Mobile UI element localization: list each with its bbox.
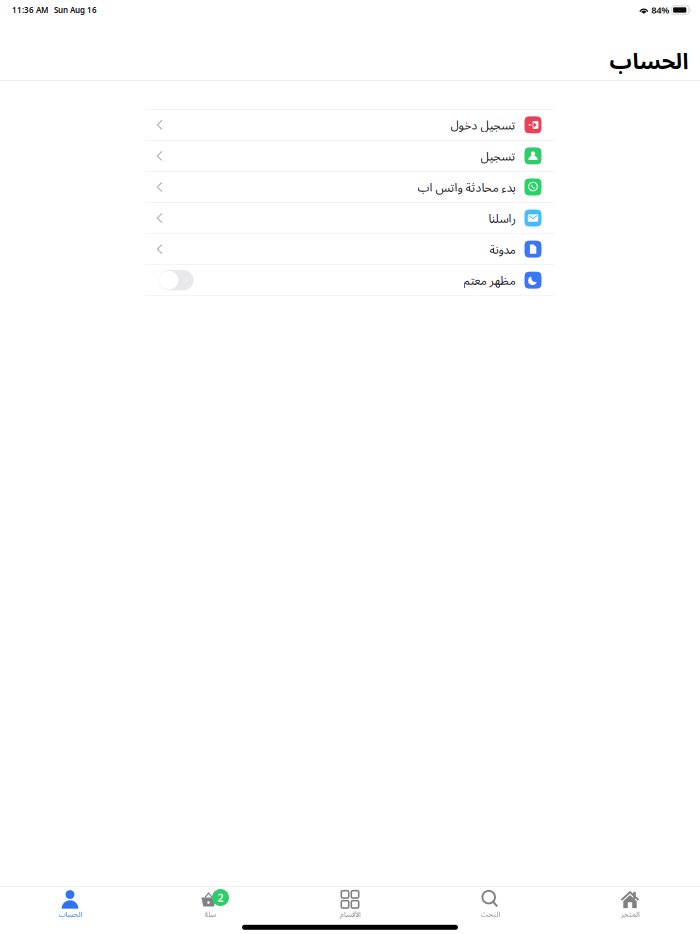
button[interactable]: تسجيل دخول: [145, 110, 555, 140]
staticText: راسلنا: [488, 210, 515, 226]
button[interactable]: الأقسام: [280, 887, 420, 921]
button[interactable]: بدء محادثة واتس اب: [145, 172, 555, 202]
button[interactable]: الحساب: [0, 887, 140, 921]
staticText: البحث: [480, 909, 500, 919]
button[interactable]: 2: [140, 887, 280, 921]
button[interactable]: راسلنا: [145, 203, 555, 233]
button[interactable]: تسجيل: [145, 141, 555, 171]
staticText: 11:36 AM: [12, 5, 48, 15]
staticText: الحساب: [58, 909, 82, 919]
staticText: الأقسام: [339, 909, 360, 919]
staticText: المتجر: [620, 909, 639, 919]
staticText: مظهر معتم: [463, 272, 515, 288]
button[interactable]: مدونة: [145, 234, 555, 264]
staticText: مدونة: [489, 241, 515, 257]
button[interactable]: مظهر معتم: [145, 265, 555, 295]
button[interactable]: Dark appearance toggle: [155, 270, 193, 290]
staticText: بدء محادثة واتس اب: [417, 179, 515, 195]
staticText: تسجيل دخول: [450, 117, 515, 133]
staticText: سلة: [204, 909, 216, 919]
staticText: 84%: [651, 4, 669, 16]
staticText: 2: [217, 890, 223, 905]
staticText: Sun Aug 16: [54, 5, 97, 15]
button[interactable]: المتجر: [560, 887, 700, 921]
staticText: تسجيل: [480, 148, 515, 164]
button[interactable]: البحث: [420, 887, 560, 921]
staticText: الحساب: [609, 45, 688, 75]
